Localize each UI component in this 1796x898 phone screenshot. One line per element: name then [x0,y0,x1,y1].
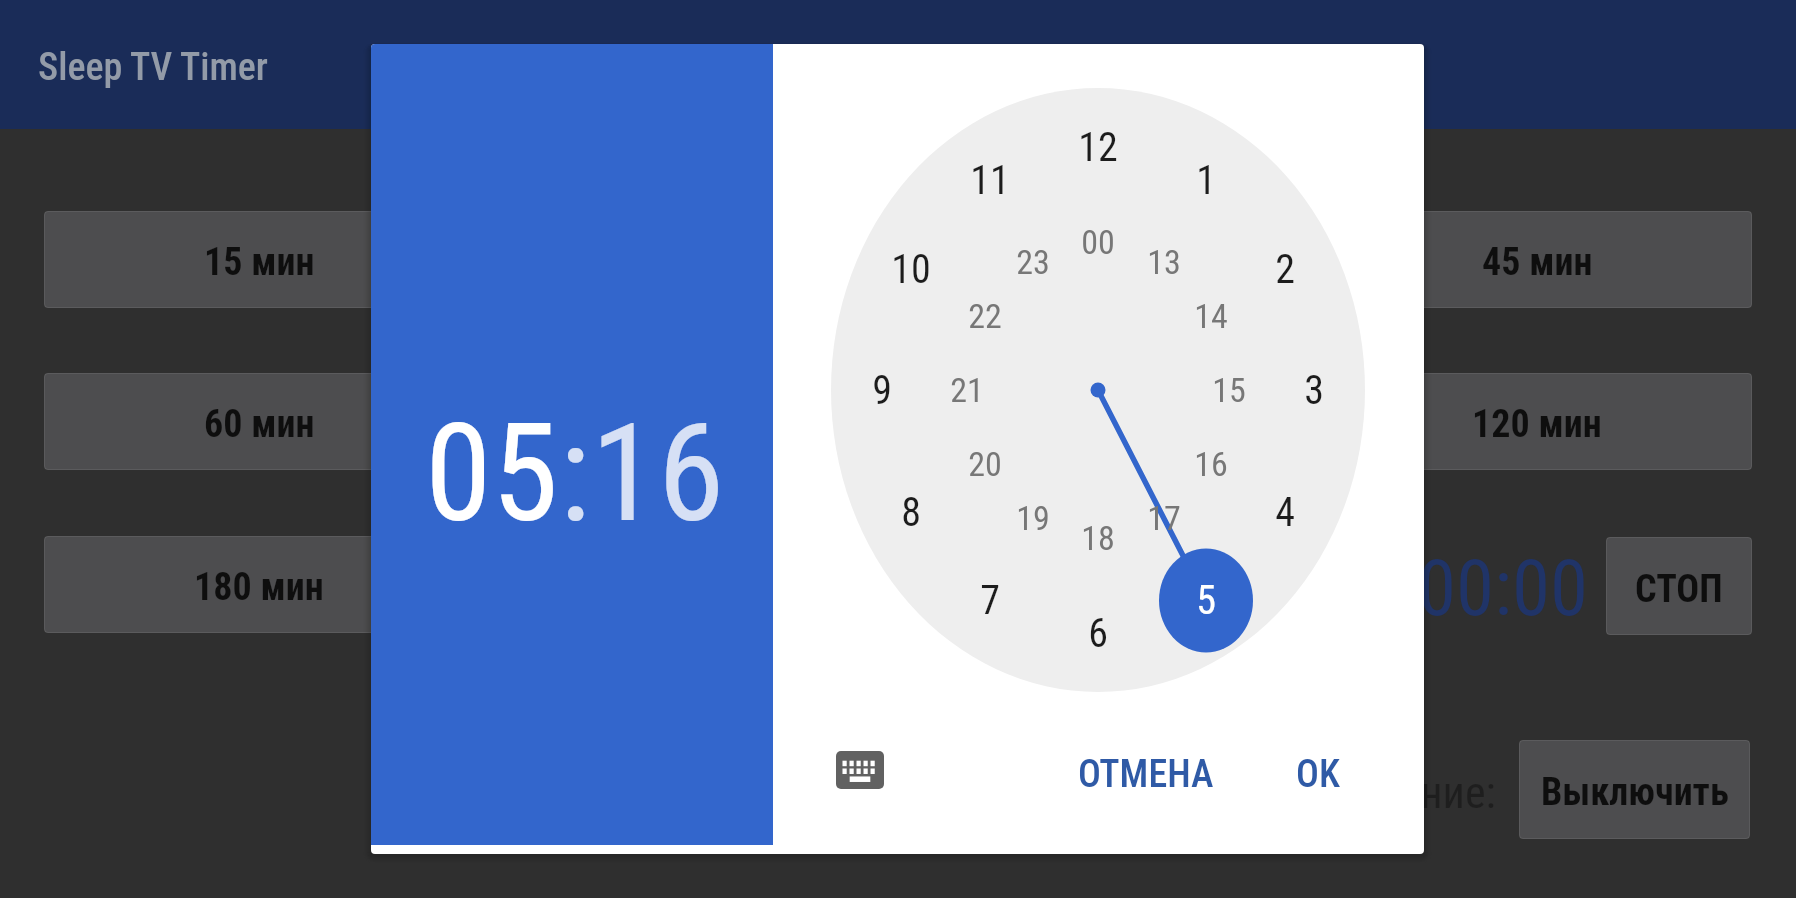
staticText: 3 [1304,367,1324,414]
staticText: 18 [1081,518,1115,558]
button[interactable]: 180 мин [44,536,474,633]
button[interactable]: 23 [988,229,1078,295]
staticText: 00 [1081,222,1115,262]
button[interactable]: 20 [940,431,1030,497]
staticText: ОТМЕНА [1078,752,1214,797]
staticText: Sleep TV Timer [38,45,269,90]
staticText: 12 [1078,124,1118,171]
staticText: 15 мин [204,240,315,285]
staticText: Выключить [1541,770,1729,815]
staticText: 7 [980,577,1000,624]
button[interactable]: 60 мин [44,373,474,470]
button[interactable]: 5 [1161,567,1251,633]
button[interactable]: 15 [1184,357,1274,423]
staticText: 6 [1088,610,1108,657]
button[interactable]: 120 мин [1322,373,1752,470]
staticText: 2 [1275,246,1295,293]
button[interactable]: 2 [1240,236,1330,302]
staticText: 17 [1147,498,1181,538]
staticText: : [559,395,591,553]
staticText: 4 [1275,489,1295,536]
staticText: 14 [1194,296,1228,336]
button[interactable]: 10 [866,236,956,302]
button[interactable]: 12 [1053,114,1143,180]
staticText: 16 [1194,444,1228,484]
staticText: Текущее состояние: [1132,767,1496,819]
button[interactable]: OK [1272,736,1364,813]
staticText: 00:00 [1418,544,1589,634]
button[interactable]: 6 [1053,600,1143,666]
button[interactable]: 16 [1166,431,1256,497]
staticText: 11 [970,157,1010,204]
button[interactable]: 3 [1269,357,1359,423]
staticText: 19 [1016,498,1050,538]
button[interactable]: ОТМЕНА [1054,736,1238,813]
staticText: 5 [1196,577,1216,624]
button[interactable]: 15 мин [44,211,474,308]
staticText: 23 [1016,242,1050,282]
button[interactable]: 7 [945,567,1035,633]
button[interactable]: 19 [988,485,1078,551]
staticText: 60 мин [204,402,315,447]
button[interactable]: 16 [591,395,725,553]
button[interactable]: 11 [945,147,1035,213]
staticText: 16 [591,395,725,553]
staticText: СТОП [1635,567,1723,612]
staticText: 120 мин [1472,402,1602,447]
staticText: 15 [1212,370,1246,410]
staticText: 180 мин [194,565,324,610]
staticText: 13 [1147,242,1181,282]
staticText: 22 [968,296,1002,336]
button[interactable]: 8 [866,479,956,545]
staticText: 1 [1196,157,1216,204]
button[interactable]: 45 мин [1322,211,1752,308]
button[interactable]: 13 [1119,229,1209,295]
button[interactable]: 00 [1053,209,1143,275]
button[interactable]: 4 [1240,479,1330,545]
button[interactable]: 22 [940,283,1030,349]
staticText: 20 [968,444,1002,484]
staticText: 10 [891,246,931,293]
staticText: OK [1296,752,1340,797]
button[interactable]: 14 [1166,283,1256,349]
staticText: 05 [425,395,559,553]
button[interactable]: 17 [1119,485,1209,551]
staticText: 8 [901,489,921,536]
button[interactable]: Switch to text input [836,751,884,789]
button[interactable]: 05 [425,395,559,553]
button[interactable]: 9 [837,357,927,423]
button[interactable]: 1 [1161,147,1251,213]
button[interactable]: Выключить [1519,740,1750,839]
button[interactable]: 18 [1053,505,1143,571]
button[interactable]: 21 [922,357,1012,423]
staticText: 9 [872,367,892,414]
staticText: 21 [950,370,984,410]
button[interactable]: СТОП [1606,537,1752,635]
staticText: 45 мин [1482,240,1593,285]
